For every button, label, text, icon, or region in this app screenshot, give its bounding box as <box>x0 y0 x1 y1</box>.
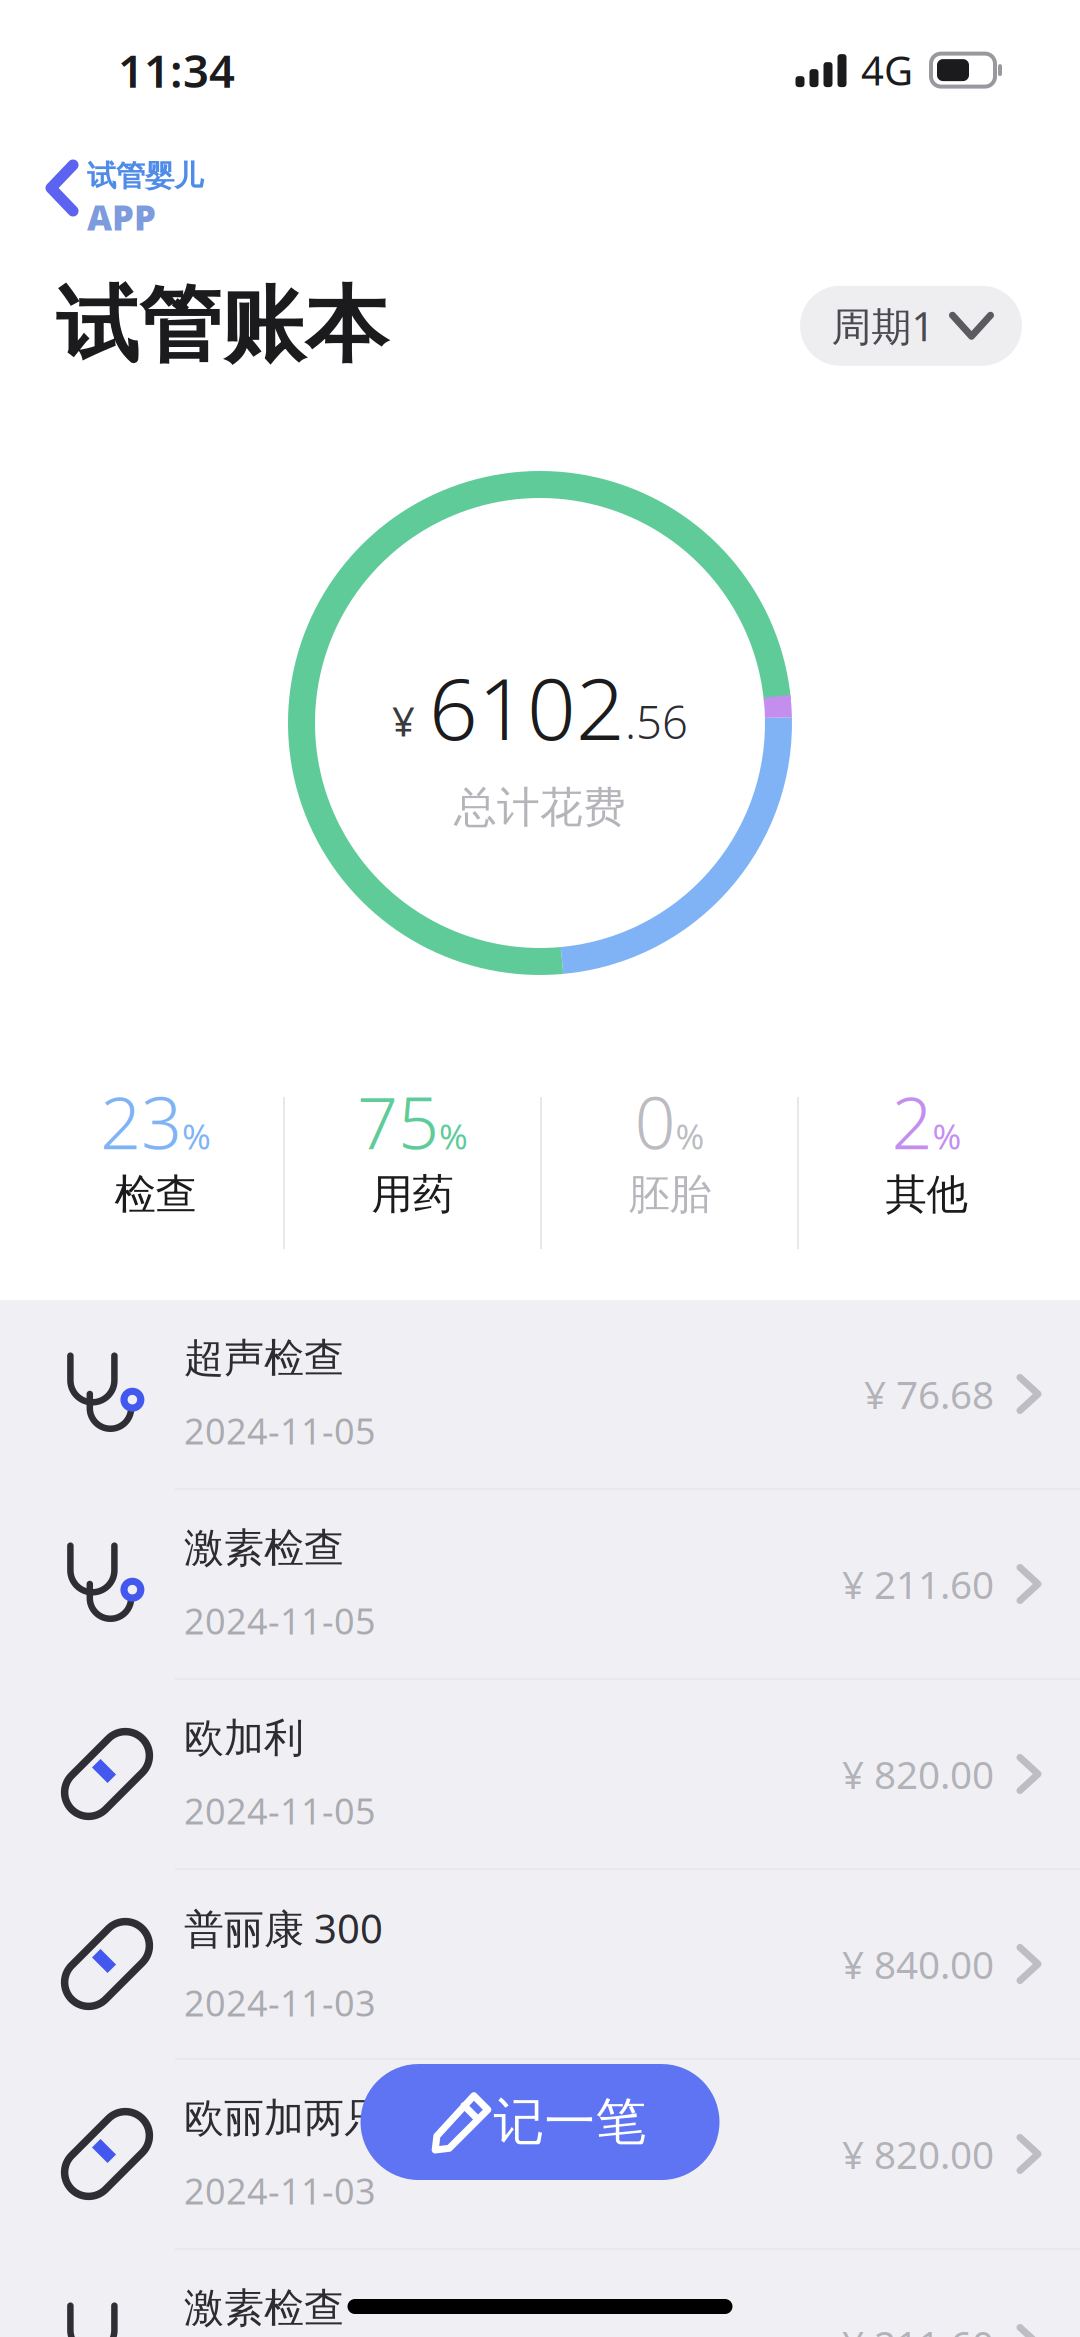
staticText: 2024-11-05 <box>184 1407 376 1454</box>
staticText: 2024-11-05 <box>184 1597 376 1644</box>
button[interactable]: 激素检查 <box>0 2250 1080 2337</box>
staticText: ¥ <box>392 694 415 747</box>
button[interactable]: 欧丽加两只 <box>0 2060 1080 2250</box>
staticText: 激素检查 <box>184 1523 344 1573</box>
staticText: % <box>182 1113 211 1159</box>
staticText: 周期1 <box>831 299 934 352</box>
staticText: 2024-11-05 <box>184 1787 376 1834</box>
button[interactable]: Back <box>0 158 231 250</box>
staticText: ¥ 211.60 <box>842 2318 994 2337</box>
button[interactable]: 超声检查 <box>0 1300 1080 1490</box>
staticText: 用药 <box>371 1169 453 1220</box>
staticText: 胚胎 <box>628 1169 710 1220</box>
staticText: 试管账本 <box>56 275 388 376</box>
staticText: 2 <box>891 1073 932 1169</box>
staticText: ¥ 820.00 <box>842 1748 994 1800</box>
staticText: 总计花费 <box>454 781 626 834</box>
button[interactable]: 激素检查 <box>0 1490 1080 1680</box>
staticText: % <box>675 1113 704 1159</box>
staticText: ¥ 820.00 <box>842 2128 994 2180</box>
staticText: 检查 <box>114 1169 196 1220</box>
staticText: ¥ 211.60 <box>842 1558 994 1610</box>
staticText: % <box>932 1113 961 1159</box>
staticText: 试管婴儿 <box>87 158 203 194</box>
button[interactable]: 普丽康 300 <box>0 1870 1080 2060</box>
staticText: % <box>439 1113 468 1159</box>
staticText: ¥ 840.00 <box>842 1938 994 1990</box>
button[interactable]: 周期1 <box>800 286 1022 366</box>
button[interactable]: 记一笔 <box>360 2064 719 2180</box>
staticText: 11:34 <box>118 40 235 100</box>
staticText: 2024-11-03 <box>184 2167 376 2214</box>
staticText: 超声检查 <box>184 1333 344 1383</box>
staticText: 6102 <box>429 650 625 763</box>
staticText: 普丽康 300 <box>184 1901 383 1955</box>
staticText: APP <box>87 194 156 240</box>
staticText: 23 <box>100 1073 182 1169</box>
staticText: 4G <box>861 43 913 97</box>
staticText: 欧加利 <box>184 1713 304 1763</box>
staticText: .56 <box>625 691 688 751</box>
staticText: 其他 <box>885 1169 967 1220</box>
staticText: 0 <box>634 1073 675 1169</box>
button[interactable]: 欧加利 <box>0 1680 1080 1870</box>
staticText: 2024-11-03 <box>184 1979 376 2026</box>
staticText: 激素检查 <box>184 2283 344 2333</box>
staticText: 75 <box>357 1073 439 1169</box>
staticText: 记一笔 <box>493 2091 646 2153</box>
staticText: ¥ 76.68 <box>864 1368 994 1420</box>
staticText: 欧丽加两只 <box>184 2093 384 2143</box>
